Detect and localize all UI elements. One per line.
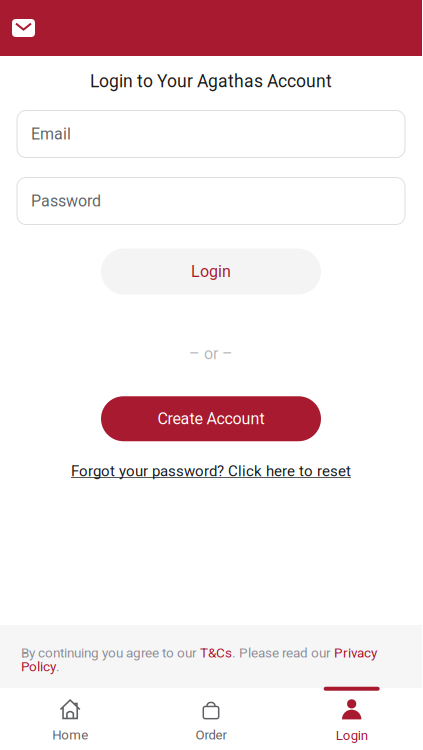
staticText: Login [336,728,368,743]
button[interactable]: Order [141,687,281,750]
staticText: Privacy [334,645,377,661]
button[interactable]: Login [101,248,321,294]
button[interactable]: Forgot your password? Click here to rese… [71,456,351,486]
staticText: Create Account [157,409,264,428]
staticText: Login to Your Agathas Account [90,71,332,91]
button[interactable]: Privacy [334,645,377,661]
staticText: Order [195,727,226,743]
staticText: Policy [21,659,56,675]
button[interactable]: Policy [21,659,56,675]
staticText: Password [31,192,101,210]
staticText: – or – [189,344,233,363]
button[interactable]: T&Cs [200,645,232,661]
button[interactable]: Messages [8,15,39,41]
staticText: Home [52,727,88,743]
staticText: . Please read our [232,645,334,661]
staticText: T&Cs [200,645,232,661]
staticText: By continuing you agree to our [21,645,200,661]
staticText: Email [31,125,71,143]
button[interactable]: Home [0,687,141,750]
staticText: Forgot your password? Click here to rese… [71,462,351,480]
staticText: . [56,659,60,675]
button[interactable]: Create Account [101,396,321,441]
button[interactable]: Login [281,687,422,750]
staticText: Login [191,262,231,281]
